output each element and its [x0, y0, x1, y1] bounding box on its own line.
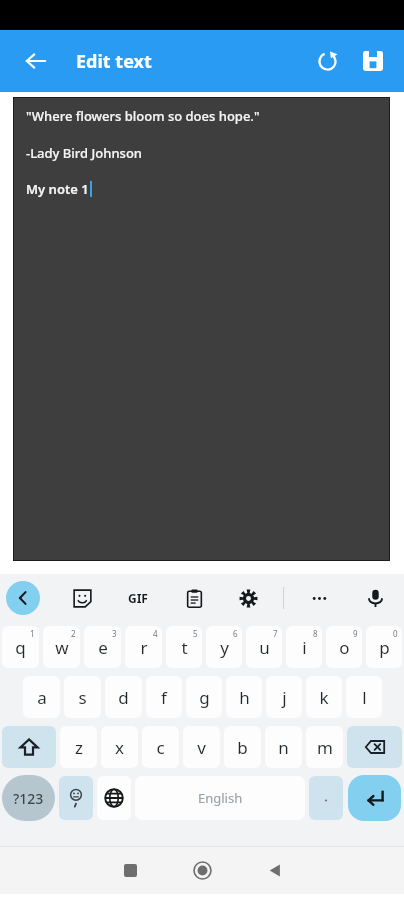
button[interactable]: Settings	[231, 581, 265, 615]
button[interactable]: Enter	[348, 775, 401, 821]
staticText: 6	[233, 628, 238, 639]
button[interactable]: c	[142, 726, 179, 768]
staticText: s	[78, 686, 87, 709]
button[interactable]: e	[84, 626, 121, 668]
button[interactable]: l	[346, 676, 382, 718]
staticText: b	[237, 736, 248, 759]
button[interactable]: "Where flowers bloom so does hope."	[13, 97, 390, 561]
staticText: g	[199, 686, 210, 709]
staticText: x	[115, 736, 124, 759]
button[interactable]: Shift	[2, 726, 56, 768]
staticText: 1	[30, 628, 35, 639]
button[interactable]: English	[135, 776, 305, 820]
button[interactable]: j	[266, 676, 302, 718]
staticText: 9	[353, 628, 358, 639]
staticText: GIF	[128, 590, 148, 606]
staticText: i	[302, 636, 307, 659]
button[interactable]: g	[186, 676, 222, 718]
button[interactable]: Clipboard	[177, 581, 211, 615]
button[interactable]: b	[224, 726, 261, 768]
staticText: English	[198, 789, 243, 807]
staticText: d	[118, 686, 129, 709]
staticText: h	[239, 686, 250, 709]
button[interactable]: x	[101, 726, 138, 768]
staticText: 8	[313, 628, 318, 639]
staticText: m	[317, 736, 333, 759]
button[interactable]: f	[146, 676, 182, 718]
button[interactable]: q	[2, 626, 39, 668]
button[interactable]: s	[64, 676, 101, 718]
button[interactable]: ?123	[2, 775, 55, 821]
button[interactable]: Voice input	[358, 581, 392, 615]
staticText: u	[259, 636, 270, 659]
staticText: 5	[193, 628, 198, 639]
staticText: "Where flowers bloom so does hope."	[26, 107, 260, 125]
staticText: k	[319, 686, 329, 709]
button[interactable]: GIF	[120, 581, 156, 615]
button[interactable]: Back	[238, 846, 310, 894]
staticText: p	[379, 636, 390, 659]
button[interactable]: h	[226, 676, 262, 718]
staticText: 0	[393, 628, 398, 639]
staticText: z	[75, 736, 83, 759]
button[interactable]: m	[306, 726, 343, 768]
staticText: c	[156, 736, 165, 759]
button[interactable]: o	[326, 626, 362, 668]
staticText: 3	[112, 628, 117, 639]
staticText: -Lady Bird Johnson	[26, 144, 142, 162]
staticText: 7	[273, 628, 278, 639]
staticText: r	[140, 636, 148, 659]
button[interactable]: t	[166, 626, 202, 668]
staticText: t	[181, 636, 188, 659]
staticText: v	[197, 736, 206, 759]
staticText: ?123	[13, 789, 44, 808]
button[interactable]: Refresh	[304, 38, 350, 84]
staticText: Edit text	[76, 49, 152, 74]
staticText: q	[15, 636, 26, 659]
staticText: l	[362, 686, 367, 709]
button[interactable]: n	[265, 726, 302, 768]
button[interactable]: Back	[14, 39, 58, 83]
button[interactable]: Home	[166, 846, 238, 894]
button[interactable]: Change language	[97, 776, 131, 820]
button[interactable]: Expand toolbar	[6, 581, 40, 615]
button[interactable]: Recent apps	[94, 846, 166, 894]
button[interactable]: Save	[350, 38, 396, 84]
button[interactable]: k	[306, 676, 342, 718]
staticText: w	[55, 636, 69, 659]
button[interactable]: Backspace	[347, 726, 402, 768]
button[interactable]: r	[125, 626, 162, 668]
staticText: e	[98, 636, 108, 659]
button[interactable]: a	[23, 676, 60, 718]
button[interactable]: Period	[309, 776, 343, 820]
button[interactable]: More options	[302, 581, 336, 615]
button[interactable]: Emoji	[59, 776, 93, 820]
staticText: 4	[153, 628, 158, 639]
staticText: 2	[71, 628, 76, 639]
button[interactable]: w	[43, 626, 80, 668]
staticText: a	[37, 686, 47, 709]
button[interactable]: u	[246, 626, 282, 668]
button[interactable]: p	[366, 626, 402, 668]
staticText: j	[282, 686, 287, 709]
button[interactable]: y	[206, 626, 242, 668]
button[interactable]: d	[105, 676, 142, 718]
staticText: My note 1	[26, 180, 89, 198]
staticText: f	[161, 686, 167, 709]
staticText: y	[220, 636, 229, 659]
button[interactable]: v	[183, 726, 220, 768]
button[interactable]: i	[286, 626, 322, 668]
button[interactable]: Stickers	[65, 581, 99, 615]
staticText: o	[339, 636, 350, 659]
button[interactable]: z	[60, 726, 97, 768]
staticText: n	[278, 736, 289, 759]
